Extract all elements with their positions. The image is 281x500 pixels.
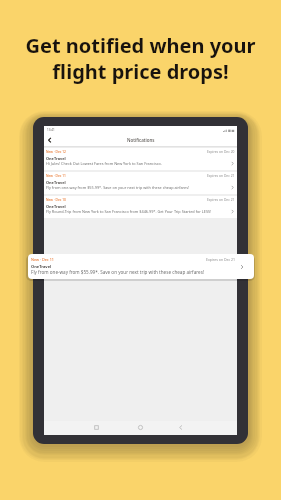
staticText: Hi Jules! Check Out Lowest Fares from Ne… — [46, 161, 162, 166]
staticText: Expires on Dec 21 — [207, 197, 235, 201]
staticText: OneTravel — [31, 264, 52, 269]
staticText: New · Dec 11 — [46, 173, 66, 177]
staticText: Expires on Dec 21 — [206, 257, 236, 262]
staticText: OneTravel — [46, 180, 66, 185]
button[interactable]: Back — [177, 424, 184, 431]
button[interactable]: New · Dec 11 — [44, 172, 237, 194]
staticText: OneTravel — [46, 204, 66, 209]
button[interactable]: New · Dec 11 — [28, 254, 254, 279]
staticText: OneTravel — [46, 156, 66, 161]
staticText: Fly Round-Trip from New York to San Fran… — [46, 209, 212, 214]
staticText: Notifications — [127, 137, 155, 143]
staticText: Get notified when your flight price drop… — [25, 32, 256, 84]
staticText: Expires on Dec 21 — [207, 173, 235, 177]
button[interactable]: Recents — [93, 424, 100, 431]
staticText: Fly from one-way from $55.99*. Save on y… — [31, 269, 205, 275]
staticText: 13:41 — [47, 128, 55, 132]
staticText: New · Dec 11 — [31, 257, 54, 262]
button[interactable]: New · Dec 12 — [44, 148, 237, 170]
staticText: Expires on Dec 20 — [207, 149, 235, 153]
staticText: Fly from one-way from $55.99*. Save on y… — [46, 185, 190, 190]
staticText: New · Dec 10 — [46, 197, 66, 201]
button[interactable]: New · Dec 10 — [44, 196, 237, 218]
button[interactable]: Home — [137, 424, 144, 431]
button[interactable]: Back — [44, 134, 55, 145]
staticText: New · Dec 12 — [46, 149, 66, 153]
